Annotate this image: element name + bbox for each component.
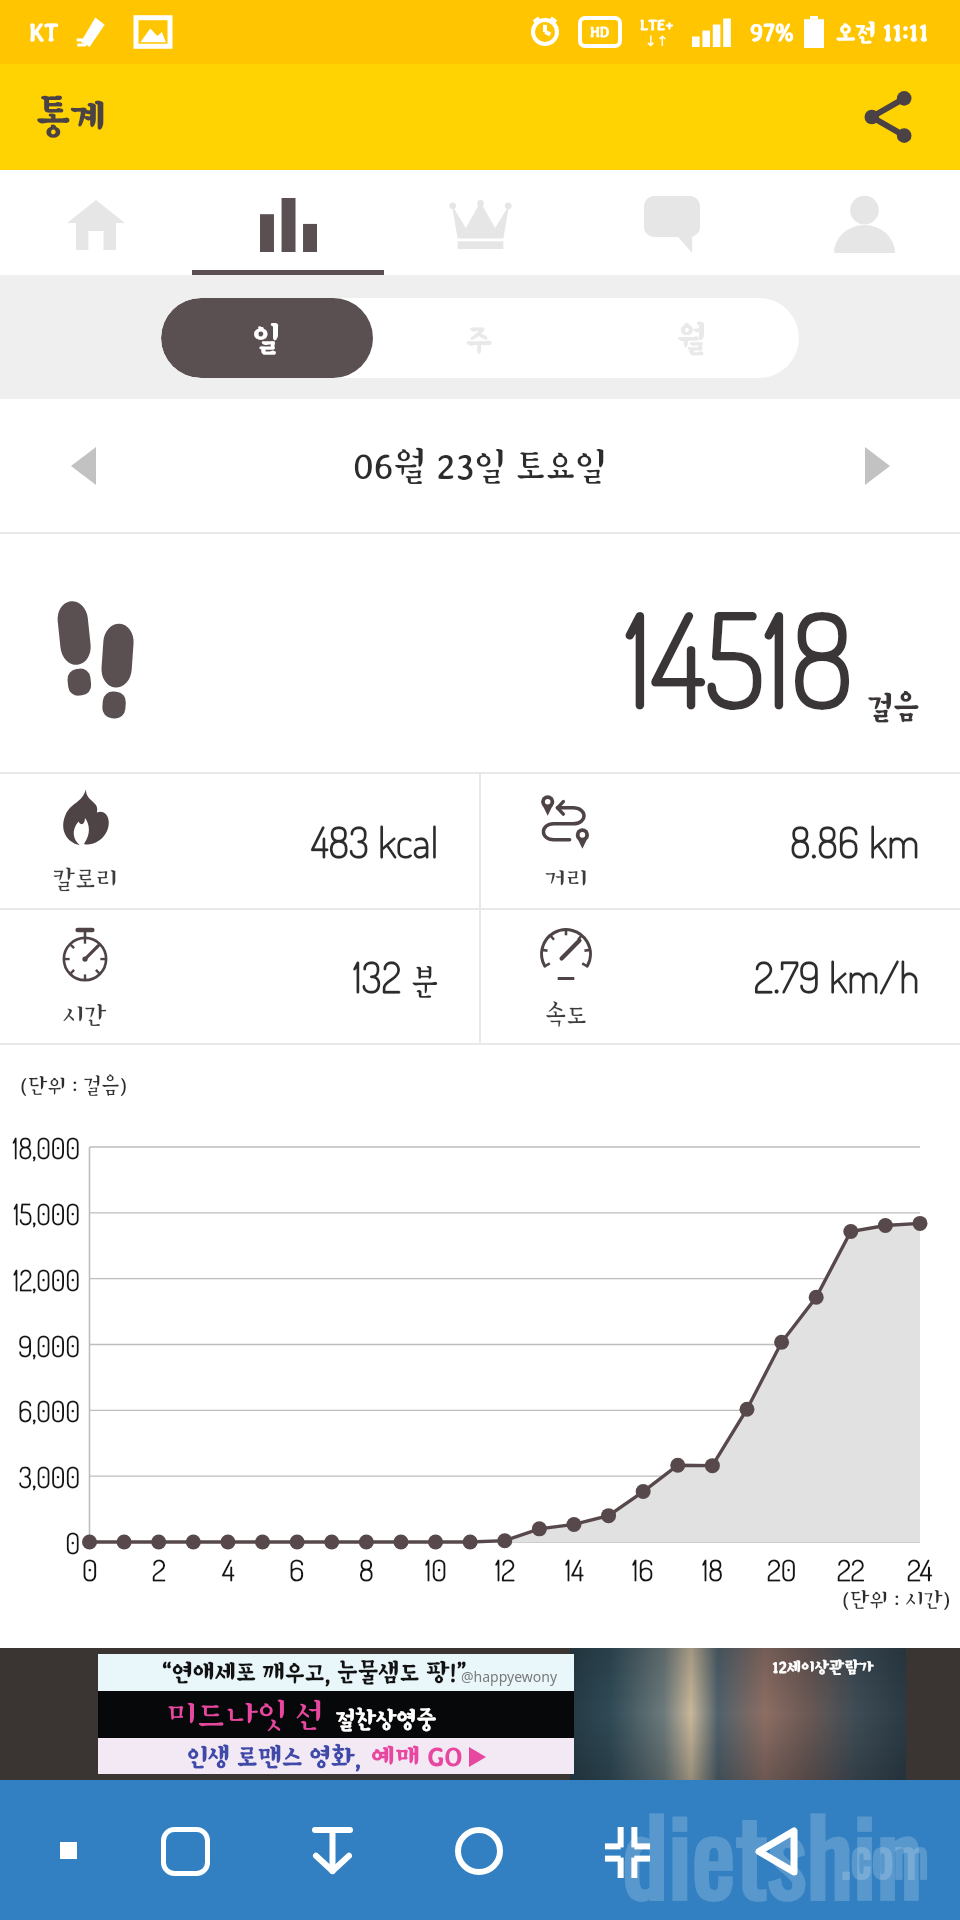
- button[interactable]: Statistics: [192, 170, 384, 275]
- staticText: 절찬상영중: [336, 1707, 437, 1733]
- staticText: (단위 : 걸음): [20, 1073, 128, 1097]
- staticText: 14: [565, 1550, 584, 1588]
- button[interactable]: Previous day: [44, 427, 122, 505]
- staticText: 2: [152, 1550, 166, 1588]
- button[interactable]: 칼로리: [0, 774, 479, 908]
- staticText: 칼로리: [53, 865, 118, 893]
- staticText: 10: [425, 1550, 447, 1588]
- button[interactable]: Home: [0, 170, 192, 275]
- button[interactable]: 속도: [481, 910, 960, 1043]
- staticText: 미드나잇 선: [166, 1696, 324, 1734]
- staticText: 인생 로맨스 영화,: [187, 1743, 361, 1771]
- staticText: 15,000: [13, 1196, 80, 1231]
- staticText: 주: [466, 320, 493, 356]
- staticText: 걸음: [868, 690, 920, 724]
- staticText: 통계: [36, 95, 107, 140]
- staticText: 16: [632, 1550, 654, 1588]
- staticText: 12,000: [13, 1262, 80, 1297]
- staticText: 20: [767, 1550, 797, 1588]
- staticText: “연애세포 깨우고, 눈물샘도 팡!”: [162, 1659, 467, 1686]
- staticText: 8: [359, 1550, 374, 1588]
- staticText: 18: [702, 1550, 723, 1588]
- button[interactable]: Profile: [768, 170, 960, 275]
- staticText: LTE+: [640, 16, 674, 33]
- staticText: 6: [289, 1550, 305, 1588]
- staticText: km/h: [829, 950, 920, 1003]
- button[interactable]: Back: [720, 1795, 832, 1907]
- button[interactable]: Share: [842, 71, 934, 163]
- button[interactable]: Ranking: [384, 170, 576, 275]
- staticText: 2.79: [754, 950, 820, 1003]
- button[interactable]: Shrink screen: [571, 1796, 683, 1908]
- staticText: 22: [837, 1550, 865, 1588]
- staticText: 06월 23일 토요일: [353, 445, 607, 486]
- staticText: 시간: [63, 1001, 107, 1029]
- staticText: 거리: [545, 865, 588, 893]
- staticText: 12세이상관람가: [772, 1658, 874, 1676]
- staticText: @happyewony: [461, 1667, 558, 1686]
- staticText: 132: [353, 950, 402, 1003]
- staticText: ↓↑: [645, 33, 669, 49]
- staticText: 0: [65, 1525, 80, 1560]
- button[interactable]: Show notifications: [276, 1794, 388, 1906]
- staticText: 12: [495, 1550, 516, 1588]
- staticText: 18,000: [12, 1130, 80, 1165]
- button[interactable]: 일: [161, 298, 373, 378]
- staticText: 9,000: [18, 1328, 80, 1363]
- staticText: HD: [590, 24, 610, 40]
- staticText: dietshin: [622, 1775, 923, 1915]
- staticText: KT: [29, 19, 59, 46]
- staticText: km: [869, 815, 920, 868]
- staticText: 8.86: [790, 815, 860, 868]
- button[interactable]: Home: [423, 1795, 535, 1907]
- staticText: 0: [82, 1550, 98, 1588]
- staticText: .com: [841, 1817, 929, 1894]
- staticText: (단위 : 시간): [842, 1587, 951, 1611]
- button[interactable]: Recent apps: [129, 1795, 241, 1907]
- staticText: kcal: [378, 815, 439, 868]
- button[interactable]: 거리: [481, 774, 960, 908]
- button[interactable]: Community: [576, 170, 768, 275]
- button[interactable]: Advertisement: 미드나잇 선: [0, 1648, 960, 1780]
- staticText: 24: [907, 1550, 933, 1588]
- staticText: 일: [253, 320, 281, 356]
- staticText: 속도: [545, 1001, 587, 1029]
- button[interactable]: 14518: [0, 534, 960, 772]
- button[interactable]: Menu: [12, 1794, 124, 1906]
- staticText: 분: [411, 965, 439, 1001]
- staticText: 예매 GO: [371, 1742, 463, 1771]
- staticText: 14518: [625, 576, 854, 738]
- staticText: 6,000: [17, 1393, 80, 1428]
- button[interactable]: 월: [586, 298, 799, 378]
- staticText: 3,000: [18, 1459, 80, 1494]
- staticText: 483: [311, 815, 369, 868]
- staticText: 월: [678, 320, 707, 356]
- staticText: 4: [222, 1550, 235, 1588]
- button[interactable]: 시간: [0, 910, 479, 1043]
- staticText: 오전 11:11: [836, 19, 929, 46]
- staticText: 97%: [750, 19, 794, 46]
- button[interactable]: Next day: [838, 427, 916, 505]
